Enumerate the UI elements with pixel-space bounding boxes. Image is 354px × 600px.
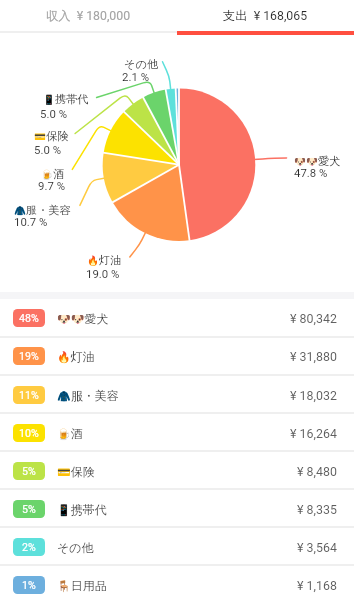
staticText: ¥ 16,264: [290, 426, 337, 441]
staticText: ¥ 80,342: [290, 311, 337, 326]
button[interactable]: 支出 ¥ 168,065: [177, 0, 354, 31]
button[interactable]: 19%: [0, 337, 354, 375]
staticText: 10%: [19, 427, 39, 439]
staticText: 🧥服・美容: [14, 203, 71, 217]
staticText: 🧥服・美容: [57, 388, 119, 403]
staticText: 2.1 %: [122, 70, 149, 83]
staticText: ¥ 31,880: [290, 349, 337, 364]
staticText: 5%: [22, 465, 36, 477]
staticText: その他: [124, 57, 159, 71]
staticText: 48%: [19, 312, 39, 324]
staticText: 🐶🐶愛犬: [57, 311, 109, 326]
staticText: 🔥灯油: [87, 253, 122, 267]
staticText: 📱携帯代: [43, 92, 89, 106]
staticText: ¥ 8,480: [297, 464, 337, 479]
staticText: 9.7 %: [38, 179, 65, 192]
staticText: 11%: [19, 389, 39, 401]
staticText: 🍺酒: [41, 167, 65, 181]
button[interactable]: 5%: [0, 452, 354, 490]
staticText: 支出 ¥ 168,065: [223, 8, 308, 23]
staticText: 19.0 %: [86, 267, 120, 280]
staticText: ¥ 1,168: [297, 578, 337, 593]
button[interactable]: 10%: [0, 414, 354, 452]
staticText: 💳保険: [57, 464, 95, 479]
staticText: 5.0 %: [34, 143, 61, 156]
staticText: 🔥灯油: [57, 349, 95, 364]
staticText: 💳保険: [34, 129, 69, 143]
staticText: その他: [57, 540, 94, 555]
staticText: 5.0 %: [40, 107, 67, 120]
staticText: 10.7 %: [14, 215, 48, 228]
staticText: ¥ 8,335: [297, 502, 337, 517]
staticText: 収入 ¥ 180,000: [46, 8, 131, 23]
button[interactable]: 収入 ¥ 180,000: [0, 0, 177, 31]
staticText: 🍺酒: [57, 426, 83, 441]
staticText: 19%: [19, 350, 39, 362]
staticText: 5%: [22, 503, 36, 515]
button[interactable]: 11%: [0, 376, 354, 414]
staticText: 1%: [22, 579, 36, 591]
button[interactable]: 2%: [0, 528, 354, 566]
staticText: 🐶🐶愛犬: [294, 154, 341, 168]
staticText: 47.8 %: [294, 166, 328, 179]
button[interactable]: 5%: [0, 490, 354, 528]
staticText: ¥ 18,032: [290, 388, 337, 403]
button[interactable]: 48%: [0, 299, 354, 337]
staticText: 🪑日用品: [57, 578, 107, 593]
staticText: ¥ 3,564: [297, 540, 337, 555]
staticText: 2%: [22, 541, 36, 553]
staticText: 📱携帯代: [57, 502, 107, 517]
button[interactable]: 1%: [0, 566, 354, 600]
